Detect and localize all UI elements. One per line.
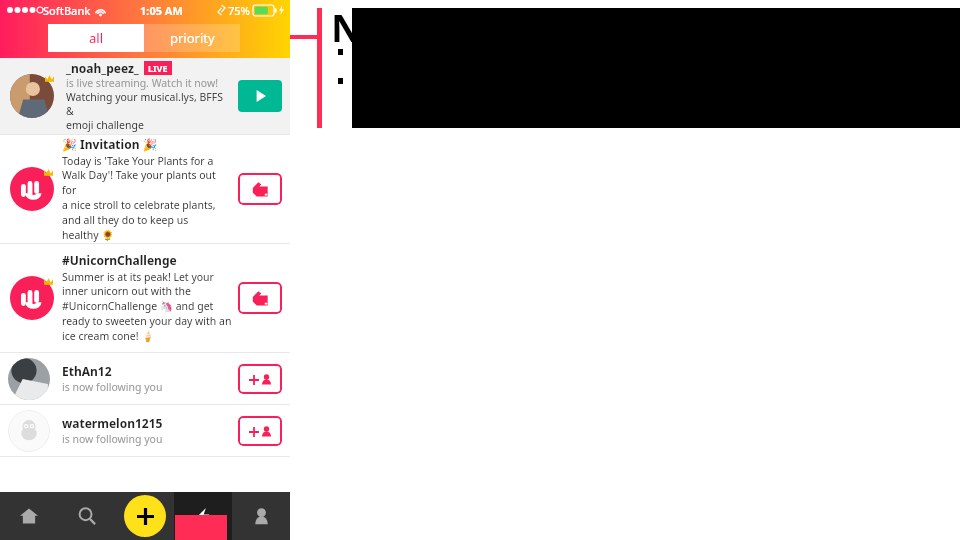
staticText: 75%	[228, 3, 250, 18]
button[interactable]: Like	[238, 173, 282, 205]
staticText: SoftBank	[43, 3, 91, 18]
button[interactable]: all	[48, 24, 144, 52]
staticText: _noah_peez_	[66, 60, 139, 76]
staticText: 1:05 AM	[140, 3, 183, 18]
button[interactable]: watermelon1215	[0, 405, 290, 456]
staticText: all	[89, 29, 104, 47]
button[interactable]: Home	[0, 492, 58, 540]
button[interactable]: 🎉 Invitation 🎉	[0, 135, 290, 243]
button[interactable]: _noah_peez_	[0, 58, 290, 134]
staticText: 🎉 Invitation 🎉	[62, 136, 158, 152]
button[interactable]: priority	[144, 24, 240, 52]
staticText: N	[331, 1, 362, 53]
staticText: is now following you	[62, 380, 163, 394]
button[interactable]: Profile	[232, 492, 290, 540]
button[interactable]: EthAn12	[0, 353, 290, 404]
staticText: watermelon1215	[62, 415, 163, 431]
button[interactable]: Follow watermelon1215	[238, 416, 282, 446]
button[interactable]: Play live stream	[238, 80, 282, 112]
button[interactable]: Follow EthAn12	[238, 364, 282, 394]
staticText: is now following you	[62, 432, 163, 446]
staticText: Today is 'Take Your Plants for a Walk Da…	[62, 154, 232, 243]
staticText: Watching your musical.lys, BFFS & emoji …	[66, 90, 232, 132]
staticText: LIVE	[148, 62, 168, 74]
staticText: EthAn12	[62, 363, 112, 379]
button[interactable]: Activity	[174, 492, 232, 540]
staticText: Summer is at its peak! Let your inner un…	[62, 270, 232, 344]
staticText: priority	[170, 29, 215, 47]
staticText: #UnicornChallenge	[62, 252, 177, 268]
button[interactable]: Like	[238, 282, 282, 314]
button[interactable]: Search	[58, 492, 116, 540]
button[interactable]: Create	[124, 495, 166, 537]
button[interactable]: #UnicornChallenge	[0, 244, 290, 352]
staticText: is live streaming. Watch it now!	[66, 76, 219, 90]
